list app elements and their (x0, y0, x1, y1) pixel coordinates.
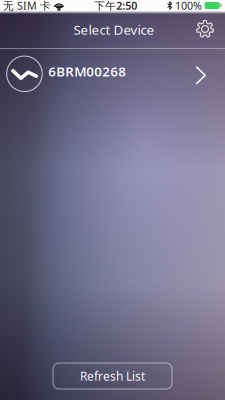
staticText: Select Device (73, 21, 154, 38)
staticText: Refresh List (80, 368, 145, 384)
button[interactable]: 6BRM00268 (0, 49, 225, 94)
staticText: 无 SIM 卡 (3, 0, 51, 13)
staticText: 下午2:50 (94, 0, 137, 13)
button[interactable]: Refresh List (53, 363, 172, 389)
staticText: 6BRM00268 (48, 62, 126, 80)
button[interactable]: Settings (188, 12, 222, 46)
staticText: 100% (175, 0, 202, 13)
